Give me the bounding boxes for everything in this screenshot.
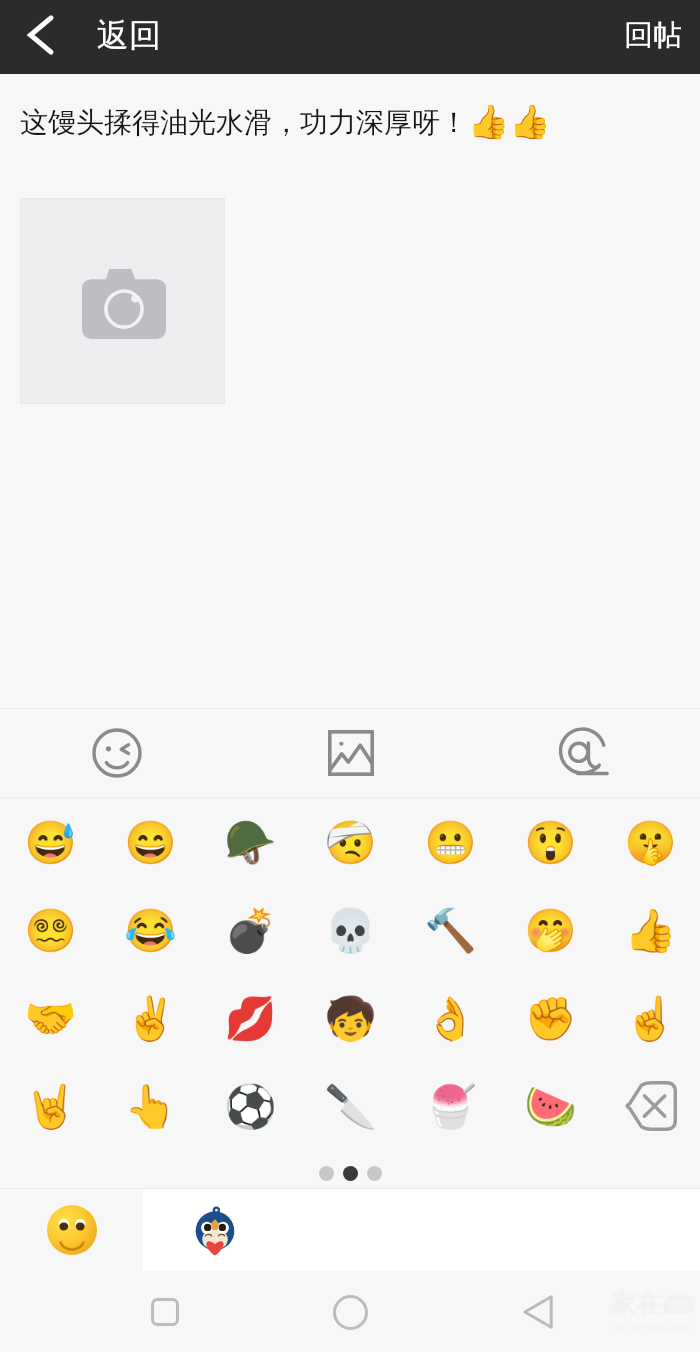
- staticText: 🍧: [424, 1082, 477, 1131]
- staticText: 🤫: [624, 818, 677, 867]
- button[interactable]: Classic emoji tab: [0, 1189, 143, 1271]
- button[interactable]: Mention: [467, 709, 700, 797]
- staticText: 🪖: [224, 818, 277, 867]
- button[interactable]: Emoji 👆: [100, 1062, 200, 1150]
- button[interactable]: Emoji: [0, 709, 234, 797]
- staticText: 🤕: [324, 818, 377, 867]
- staticText: ✌: [124, 994, 177, 1043]
- staticText: 💋: [224, 994, 277, 1043]
- staticText: ⚽: [224, 1082, 277, 1131]
- button[interactable]: Emoji ✌: [100, 974, 200, 1062]
- button[interactable]: Emoji 😬: [400, 798, 500, 886]
- staticText: 🍉: [524, 1082, 577, 1131]
- button[interactable]: Emoji 😄: [100, 798, 200, 886]
- button[interactable]: Emoji 🔨: [400, 886, 500, 974]
- staticText: 😄: [124, 818, 177, 867]
- button[interactable]: Emoji 🤝: [0, 974, 100, 1062]
- button[interactable]: Emoji ✊: [500, 974, 600, 1062]
- button[interactable]: Add photo: [20, 198, 225, 404]
- staticText: 🤭: [524, 906, 577, 955]
- button[interactable]: Back: [496, 1282, 580, 1342]
- button[interactable]: Emoji 🍧: [400, 1062, 500, 1150]
- staticText: 🔨: [424, 906, 477, 955]
- staticText: 💣: [224, 906, 277, 955]
- button[interactable]: Photo: [234, 709, 467, 797]
- button[interactable]: Home: [308, 1282, 392, 1342]
- staticText: 👌: [424, 994, 477, 1043]
- button[interactable]: Emoji 🤫: [600, 798, 700, 886]
- staticText: 😲: [524, 818, 577, 867]
- staticText: 😂: [124, 906, 177, 955]
- button[interactable]: Emoji 💋: [200, 974, 300, 1062]
- staticText: 👍👍: [468, 102, 551, 141]
- button[interactable]: Emoji 🤭: [500, 886, 600, 974]
- staticText: ☝: [624, 994, 677, 1043]
- button[interactable]: Emoji 😂: [100, 886, 200, 974]
- button[interactable]: Backspace: [600, 1062, 700, 1150]
- staticText: 回帖: [624, 17, 682, 54]
- staticText: 😬: [424, 818, 477, 867]
- staticText: ✊: [524, 994, 577, 1043]
- button[interactable]: Emoji 🤘: [0, 1062, 100, 1150]
- button[interactable]: Emoji 👍: [600, 886, 700, 974]
- button[interactable]: Emoji 😅: [0, 798, 100, 886]
- staticText: 🔪: [324, 1082, 377, 1131]
- button[interactable]: Emoji 🪖: [200, 798, 300, 886]
- button[interactable]: Emoji 🧒: [300, 974, 400, 1062]
- staticText: 👍: [624, 906, 677, 955]
- button[interactable]: Emoji 😵‍💫: [0, 886, 100, 974]
- staticText: 🧒: [324, 994, 377, 1043]
- staticText: 👆: [124, 1082, 177, 1131]
- button[interactable]: 回帖: [500, 0, 700, 74]
- button[interactable]: Emoji 👌: [400, 974, 500, 1062]
- button[interactable]: Emoji ⚽: [200, 1062, 300, 1150]
- staticText: 🤘: [24, 1082, 77, 1131]
- staticText: 😵‍💫: [24, 906, 77, 955]
- button[interactable]: Emoji 💀: [300, 886, 400, 974]
- button[interactable]: Recents: [123, 1282, 207, 1342]
- button[interactable]: Emoji 🤕: [300, 798, 400, 886]
- button[interactable]: Back: [0, 0, 500, 74]
- staticText: 这馒头揉得油光水滑，功力深厚呀！: [20, 105, 468, 140]
- staticText: 😅: [24, 818, 77, 867]
- staticText: 返回: [97, 15, 161, 55]
- button[interactable]: Emoji 💣: [200, 886, 300, 974]
- button[interactable]: Emoji 🔪: [300, 1062, 400, 1150]
- button[interactable]: Emoji 🍉: [500, 1062, 600, 1150]
- button[interactable]: Sticker pack tab: [143, 1189, 700, 1271]
- staticText: 💀: [324, 906, 377, 955]
- button[interactable]: Emoji ☝: [600, 974, 700, 1062]
- button[interactable]: Emoji 😲: [500, 798, 600, 886]
- staticText: 🤝: [24, 994, 77, 1043]
